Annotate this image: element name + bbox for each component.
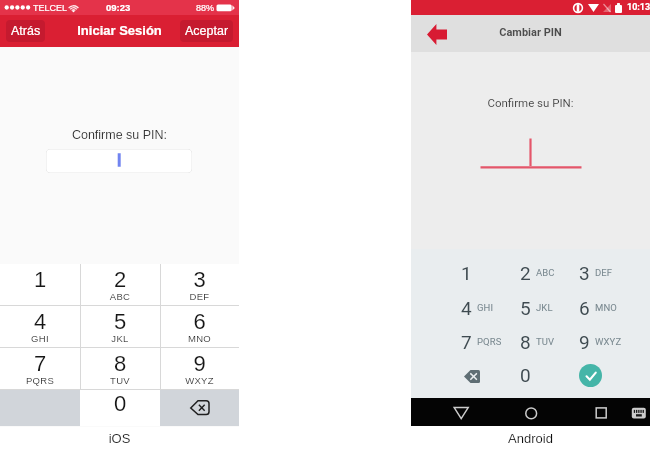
button[interactable]: 8 [80,348,160,390]
staticText: PQRS [0,375,80,386]
staticText: 4 [461,297,472,319]
staticText: 0 [114,391,127,416]
staticText: Android [411,431,650,446]
staticText: TELCEL [33,3,68,13]
staticText: 10:13 [627,2,650,13]
staticText: 4 [0,309,80,334]
staticText: ABC [536,267,555,278]
staticText: Cambiar PIN [411,26,650,39]
staticText: WXYZ [595,336,622,347]
button[interactable]: 4 [444,293,500,325]
staticText: 2 [80,267,160,292]
staticText: Confirme su PIN: [411,96,650,109]
staticText: 0 [520,364,531,386]
button[interactable]: Backspace [452,362,492,390]
staticText: MNO [595,302,617,313]
staticText: 5 [80,309,160,334]
staticText: 3 [579,262,590,284]
button[interactable]: 3 [562,258,618,290]
staticText: JKL [536,302,553,313]
staticText: Iniciar Sesión [0,23,239,38]
button[interactable]: 8 [503,327,559,359]
staticText: 09:23 [106,2,131,13]
staticText: 88% [196,3,215,13]
staticText: DEF [595,267,613,278]
staticText: WXYZ [160,375,239,386]
staticText: ABC [80,291,160,302]
staticText: GHI [477,302,494,313]
staticText: 3 [160,267,239,292]
staticText: PQRS [477,336,502,347]
staticText: 1 [461,262,472,284]
staticText: MNO [160,333,239,344]
staticText: GHI [0,333,80,344]
button[interactable]: Backspace [160,390,239,426]
staticText: TUV [536,336,555,347]
button[interactable]: 6 [562,293,618,325]
staticText: TUV [80,375,160,386]
staticText: DEF [160,291,239,302]
staticText: 6 [160,309,239,334]
button[interactable]: 7 [0,348,80,390]
staticText: 9 [160,351,239,376]
button[interactable]: 7 [444,327,500,359]
button[interactable]: 5 [80,306,160,348]
staticText: 9 [579,331,590,353]
button[interactable]: 9 [160,348,239,390]
button[interactable]: 1 [444,258,500,290]
staticText: 5 [520,297,531,319]
button[interactable]: 9 [562,327,618,359]
staticText: 8 [80,351,160,376]
button[interactable]: 0 [80,390,160,426]
staticText: 7 [461,331,472,353]
staticText: 8 [520,331,531,353]
staticText: Atrás [11,24,41,38]
button[interactable]: Aceptar [180,20,233,42]
button[interactable]: 4 [0,306,80,348]
button[interactable]: 2 [80,264,160,306]
staticText: Confirme su PIN: [0,128,239,142]
button[interactable]: 3 [160,264,239,306]
staticText: 2 [520,262,531,284]
staticText: 1 [0,267,80,292]
button[interactable]: Confirm [579,364,602,387]
button[interactable]: 0 [506,361,544,389]
button[interactable]: 1 [0,264,80,306]
button[interactable] [46,149,192,173]
button[interactable]: Back [422,19,452,49]
staticText: 7 [0,351,80,376]
button[interactable]: Atrás [6,20,45,42]
staticText: 6 [579,297,590,319]
button[interactable]: 6 [160,306,239,348]
button[interactable]: 2 [503,258,559,290]
button[interactable]: 5 [503,293,559,325]
staticText: JKL [80,333,160,344]
staticText: iOS [0,431,239,446]
staticText: Aceptar [185,24,229,38]
